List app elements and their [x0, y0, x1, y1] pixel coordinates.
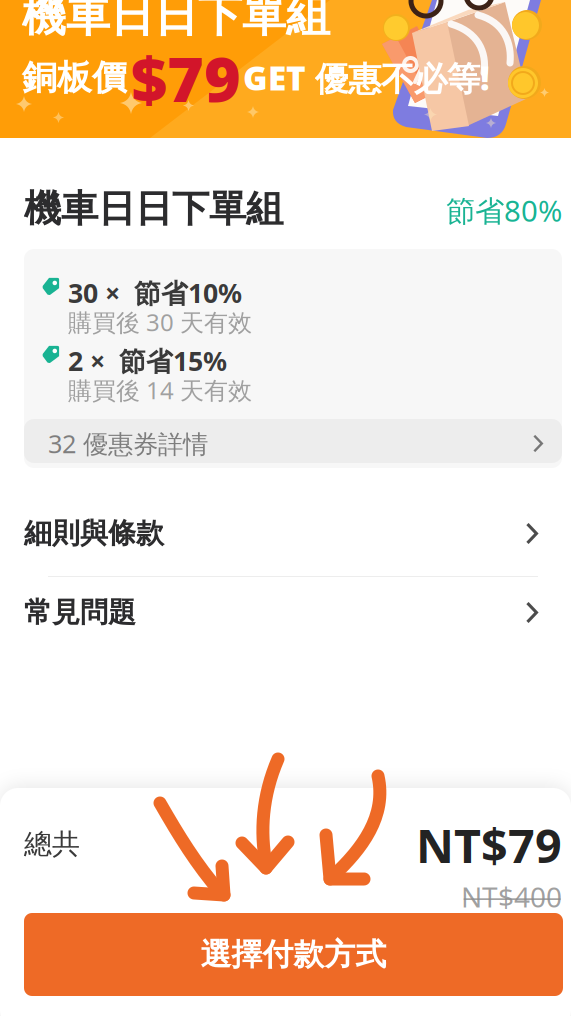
staticText: 銅板價	[22, 56, 127, 99]
staticText: $79	[131, 36, 241, 119]
staticText: 30 × 節省10%	[68, 275, 242, 310]
staticText: 機車日日下單組	[22, 0, 330, 43]
staticText: 機車日日下單組	[24, 186, 283, 232]
staticText: 細則與條款	[24, 516, 164, 551]
staticText: 2 × 節省15%	[68, 343, 227, 378]
staticText: 選擇付款方式	[200, 936, 386, 973]
staticText: 節省80%	[446, 191, 562, 230]
staticText: GET 優惠不必等!	[243, 55, 490, 100]
button[interactable]: 選擇付款方式	[24, 913, 563, 996]
staticText: 總共	[24, 827, 80, 861]
button[interactable]: 32 優惠券詳情	[24, 419, 562, 468]
staticText: NT$400	[461, 878, 562, 915]
staticText: 購買後 30 天有效	[68, 306, 252, 338]
staticText: 常見問題	[24, 595, 136, 630]
staticText: 32 優惠券詳情	[48, 427, 208, 460]
button[interactable]: 常見問題	[0, 573, 571, 652]
button[interactable]: 細則與條款	[0, 494, 571, 573]
staticText: 購買後 14 天有效	[68, 374, 252, 406]
staticText: NT$79	[416, 814, 562, 876]
